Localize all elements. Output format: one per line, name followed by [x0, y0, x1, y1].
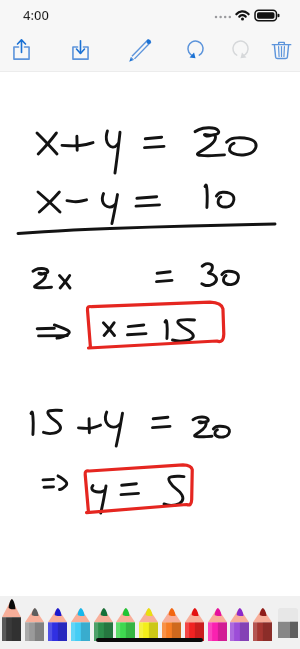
button[interactable]: Eraser: [278, 608, 298, 638]
button[interactable]: Colour 3: [48, 608, 67, 641]
button[interactable]: Colour 9: [185, 608, 204, 641]
button[interactable]: Save: [64, 33, 96, 65]
button[interactable]: Redo: [224, 33, 256, 65]
button[interactable]: Colour 11: [230, 608, 249, 641]
button[interactable]: Undo: [179, 33, 211, 65]
button[interactable]: Colour 1: [2, 599, 21, 641]
button[interactable]: Colour 2: [25, 608, 44, 641]
button[interactable]: Colour 8: [162, 608, 181, 641]
button[interactable]: Delete: [265, 33, 297, 65]
button[interactable]: Share: [5, 33, 37, 65]
staticText: 4:00: [23, 6, 49, 24]
button[interactable]: Colour 12: [253, 608, 272, 641]
button[interactable]: Colour 7: [139, 608, 158, 641]
button[interactable]: Colour 6: [116, 608, 135, 641]
button[interactable]: Draw: [124, 33, 156, 65]
button[interactable]: Colour 10: [208, 608, 227, 641]
button[interactable]: Colour 4: [71, 608, 90, 641]
button[interactable]: Colour 5: [94, 608, 113, 641]
